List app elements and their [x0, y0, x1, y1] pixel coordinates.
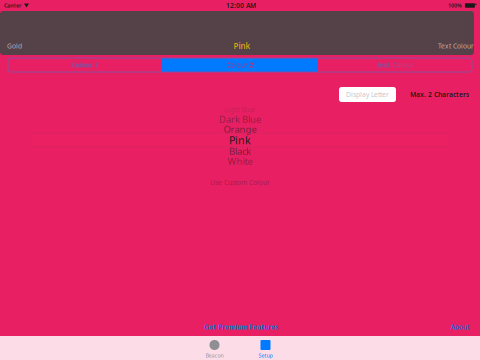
button[interactable]: Setup	[240, 336, 291, 360]
button[interactable]: Get Premium Features	[204, 322, 278, 332]
staticText: Colour 2	[226, 61, 253, 69]
button[interactable]: Colour 1	[8, 58, 162, 72]
button[interactable]: About	[450, 322, 470, 332]
staticText: Carrier	[4, 2, 21, 9]
button[interactable]: Text Colour	[318, 58, 472, 72]
staticText: Beacon	[205, 352, 223, 359]
button[interactable]: Display Letter	[339, 87, 396, 102]
staticText: 100%	[448, 2, 462, 9]
staticText: Black	[229, 145, 251, 157]
staticText: Pink	[229, 133, 251, 147]
staticText: Colour 1	[71, 61, 98, 69]
staticText: Display Letter	[346, 90, 389, 99]
staticText: Gold	[7, 42, 22, 50]
staticText: White	[227, 155, 252, 167]
staticText: Use Custom Colour	[210, 178, 270, 187]
button[interactable]: Text Colour	[438, 39, 474, 53]
staticText: Get Premium Features	[204, 323, 278, 331]
staticText: 12:00 AM	[226, 1, 256, 10]
staticText: Text Colour	[376, 61, 413, 69]
staticText: Max. 2 Characters	[410, 90, 469, 99]
button[interactable]: Colour 2	[162, 58, 318, 72]
staticText: Orange	[223, 123, 256, 135]
staticText: Setup	[258, 352, 272, 359]
staticText: About	[450, 323, 469, 331]
button[interactable]: Gold	[5, 39, 24, 53]
button[interactable]: Beacon	[189, 336, 240, 360]
staticText: Text Colour	[438, 42, 474, 50]
staticText: Dark Blue	[219, 113, 261, 125]
staticText: Light Blue	[224, 105, 255, 114]
staticText: Pink	[233, 41, 250, 51]
